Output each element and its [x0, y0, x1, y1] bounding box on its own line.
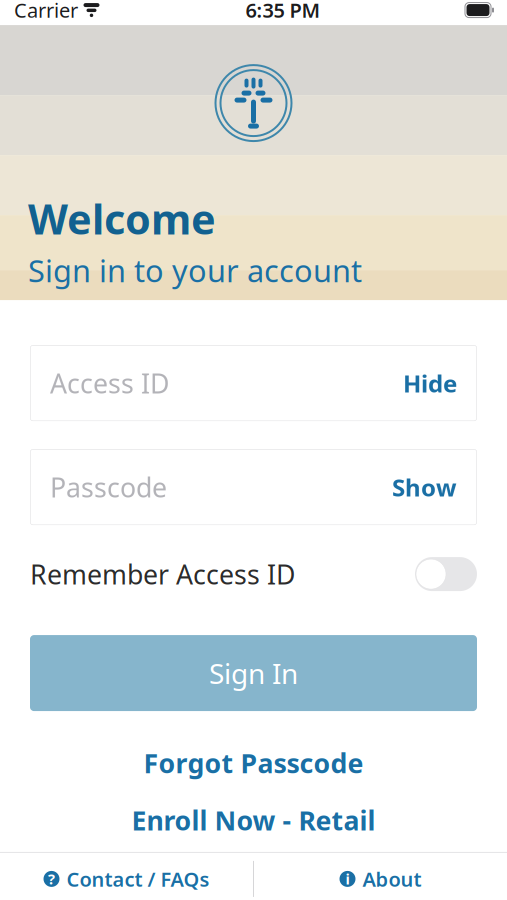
- staticText: i: [345, 869, 349, 889]
- button[interactable]: Hide: [389, 361, 457, 405]
- staticText: Remember Access ID: [30, 556, 295, 592]
- staticText: 6:35 PM: [245, 0, 320, 23]
- staticText: Sign in to your account: [28, 250, 362, 291]
- staticText: Carrier: [14, 0, 78, 23]
- button[interactable]: Forgot Passcode: [0, 739, 507, 786]
- staticText: Forgot Passcode: [143, 745, 363, 780]
- staticText: Enroll Now - Retail: [131, 802, 375, 838]
- button[interactable]: ?: [0, 853, 253, 900]
- staticText: Hide: [403, 367, 457, 399]
- button[interactable]: Sign In: [30, 635, 477, 711]
- button[interactable]: Show: [378, 465, 457, 509]
- staticText: Contact / FAQs: [66, 866, 209, 892]
- staticText: Passcode: [50, 469, 167, 505]
- staticText: Show: [392, 471, 457, 503]
- staticText: ?: [48, 869, 55, 889]
- staticText: About: [362, 866, 421, 892]
- button[interactable]: i: [254, 853, 507, 900]
- staticText: Access ID: [50, 365, 169, 401]
- staticText: Sign In: [209, 654, 298, 692]
- staticText: Welcome: [28, 191, 216, 246]
- button[interactable]: Remember Access ID: [0, 543, 507, 605]
- button[interactable]: Enroll Now - Retail: [0, 796, 507, 844]
